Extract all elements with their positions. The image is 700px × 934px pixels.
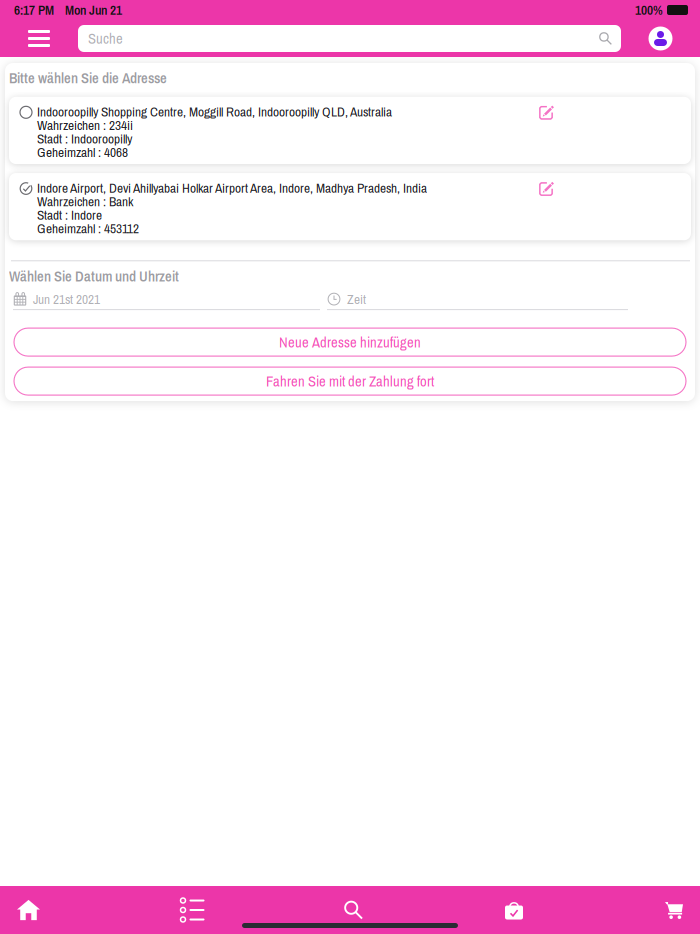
staticText: Wahrzeichen : Bank [37,195,133,208]
button[interactable]: Jun 21st 2021 [13,291,320,310]
button[interactable]: Adresse auswählen [15,105,37,120]
button[interactable]: Konto [621,20,700,57]
button[interactable]: Fahren Sie mit der Zahlung fort [14,367,686,395]
staticText: 100% [635,3,663,17]
button[interactable]: Menü [0,20,78,57]
staticText: Geheimzahl : 4068 [37,145,128,159]
button[interactable]: Warenkorb [665,886,683,934]
button[interactable]: Startseite [17,886,41,934]
staticText: Indooroopilly Shopping Centre, Moggill R… [37,105,392,118]
button[interactable]: Bestellungen [183,886,202,934]
staticText: Suche [88,31,123,46]
staticText: Stadt : Indooroopilly [37,132,132,145]
staticText: Mon Jun 21 [65,3,122,17]
staticText: Wahrzeichen : 234ii [37,118,133,132]
button[interactable]: Adresse bearbeiten [534,105,558,121]
staticText: Fahren Sie mit der Zahlung fort [266,373,434,389]
staticText: Jun 21st 2021 [33,292,100,306]
button[interactable]: Suche [344,886,363,934]
staticText: Stadt : Indore [37,208,102,222]
staticText: Geheimzahl : 453112 [37,222,139,235]
staticText: Zeit [347,292,366,306]
staticText: Neue Adresse hinzufügen [279,334,421,350]
staticText: Indore Airport, Devi Ahillyabai Holkar A… [37,181,427,195]
button[interactable]: Zeit [327,291,628,310]
staticText: 6:17 PM [14,3,54,17]
staticText: Wählen Sie Datum und Uhrzeit [9,268,179,284]
button[interactable]: Adresse bearbeiten [534,181,558,197]
staticText: Bitte wählen Sie die Adresse [9,70,167,86]
button[interactable]: Neue Adresse hinzufügen [14,328,686,356]
button[interactable]: Bestellung [505,886,523,934]
button[interactable]: Ausgewählte Adresse [15,181,37,196]
